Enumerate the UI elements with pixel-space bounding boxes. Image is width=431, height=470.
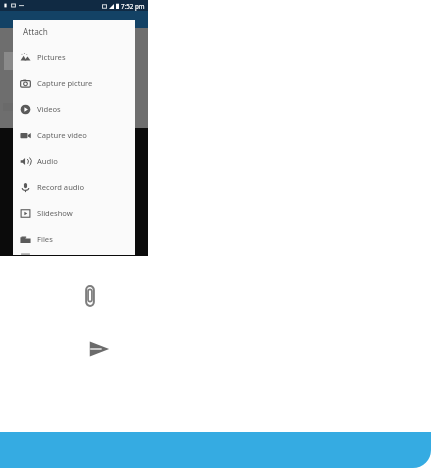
button[interactable]: Capture picture [13, 70, 135, 96]
staticText: Capture video [37, 130, 87, 140]
button[interactable]: Audio [13, 148, 135, 174]
button[interactable]: Attach [76, 282, 104, 310]
button[interactable]: Record audio [13, 174, 135, 200]
staticText: Audio [37, 156, 58, 166]
button[interactable] [13, 252, 135, 255]
staticText: Slideshow [37, 208, 73, 218]
button[interactable]: Slideshow [13, 200, 135, 226]
staticText: Files [37, 234, 53, 244]
button[interactable]: Send [84, 334, 114, 364]
staticText: Capture picture [37, 78, 93, 88]
button[interactable]: Capture video [13, 122, 135, 148]
button[interactable] [0, 432, 431, 468]
staticText: 7:52 pm [121, 2, 145, 10]
staticText: Record audio [37, 182, 85, 192]
staticText: Pictures [37, 52, 66, 62]
staticText: Videos [37, 104, 61, 114]
button[interactable]: Pictures [13, 44, 135, 70]
staticText: Attach [23, 26, 48, 37]
button[interactable]: Files [13, 226, 135, 252]
button[interactable]: Videos [13, 96, 135, 122]
